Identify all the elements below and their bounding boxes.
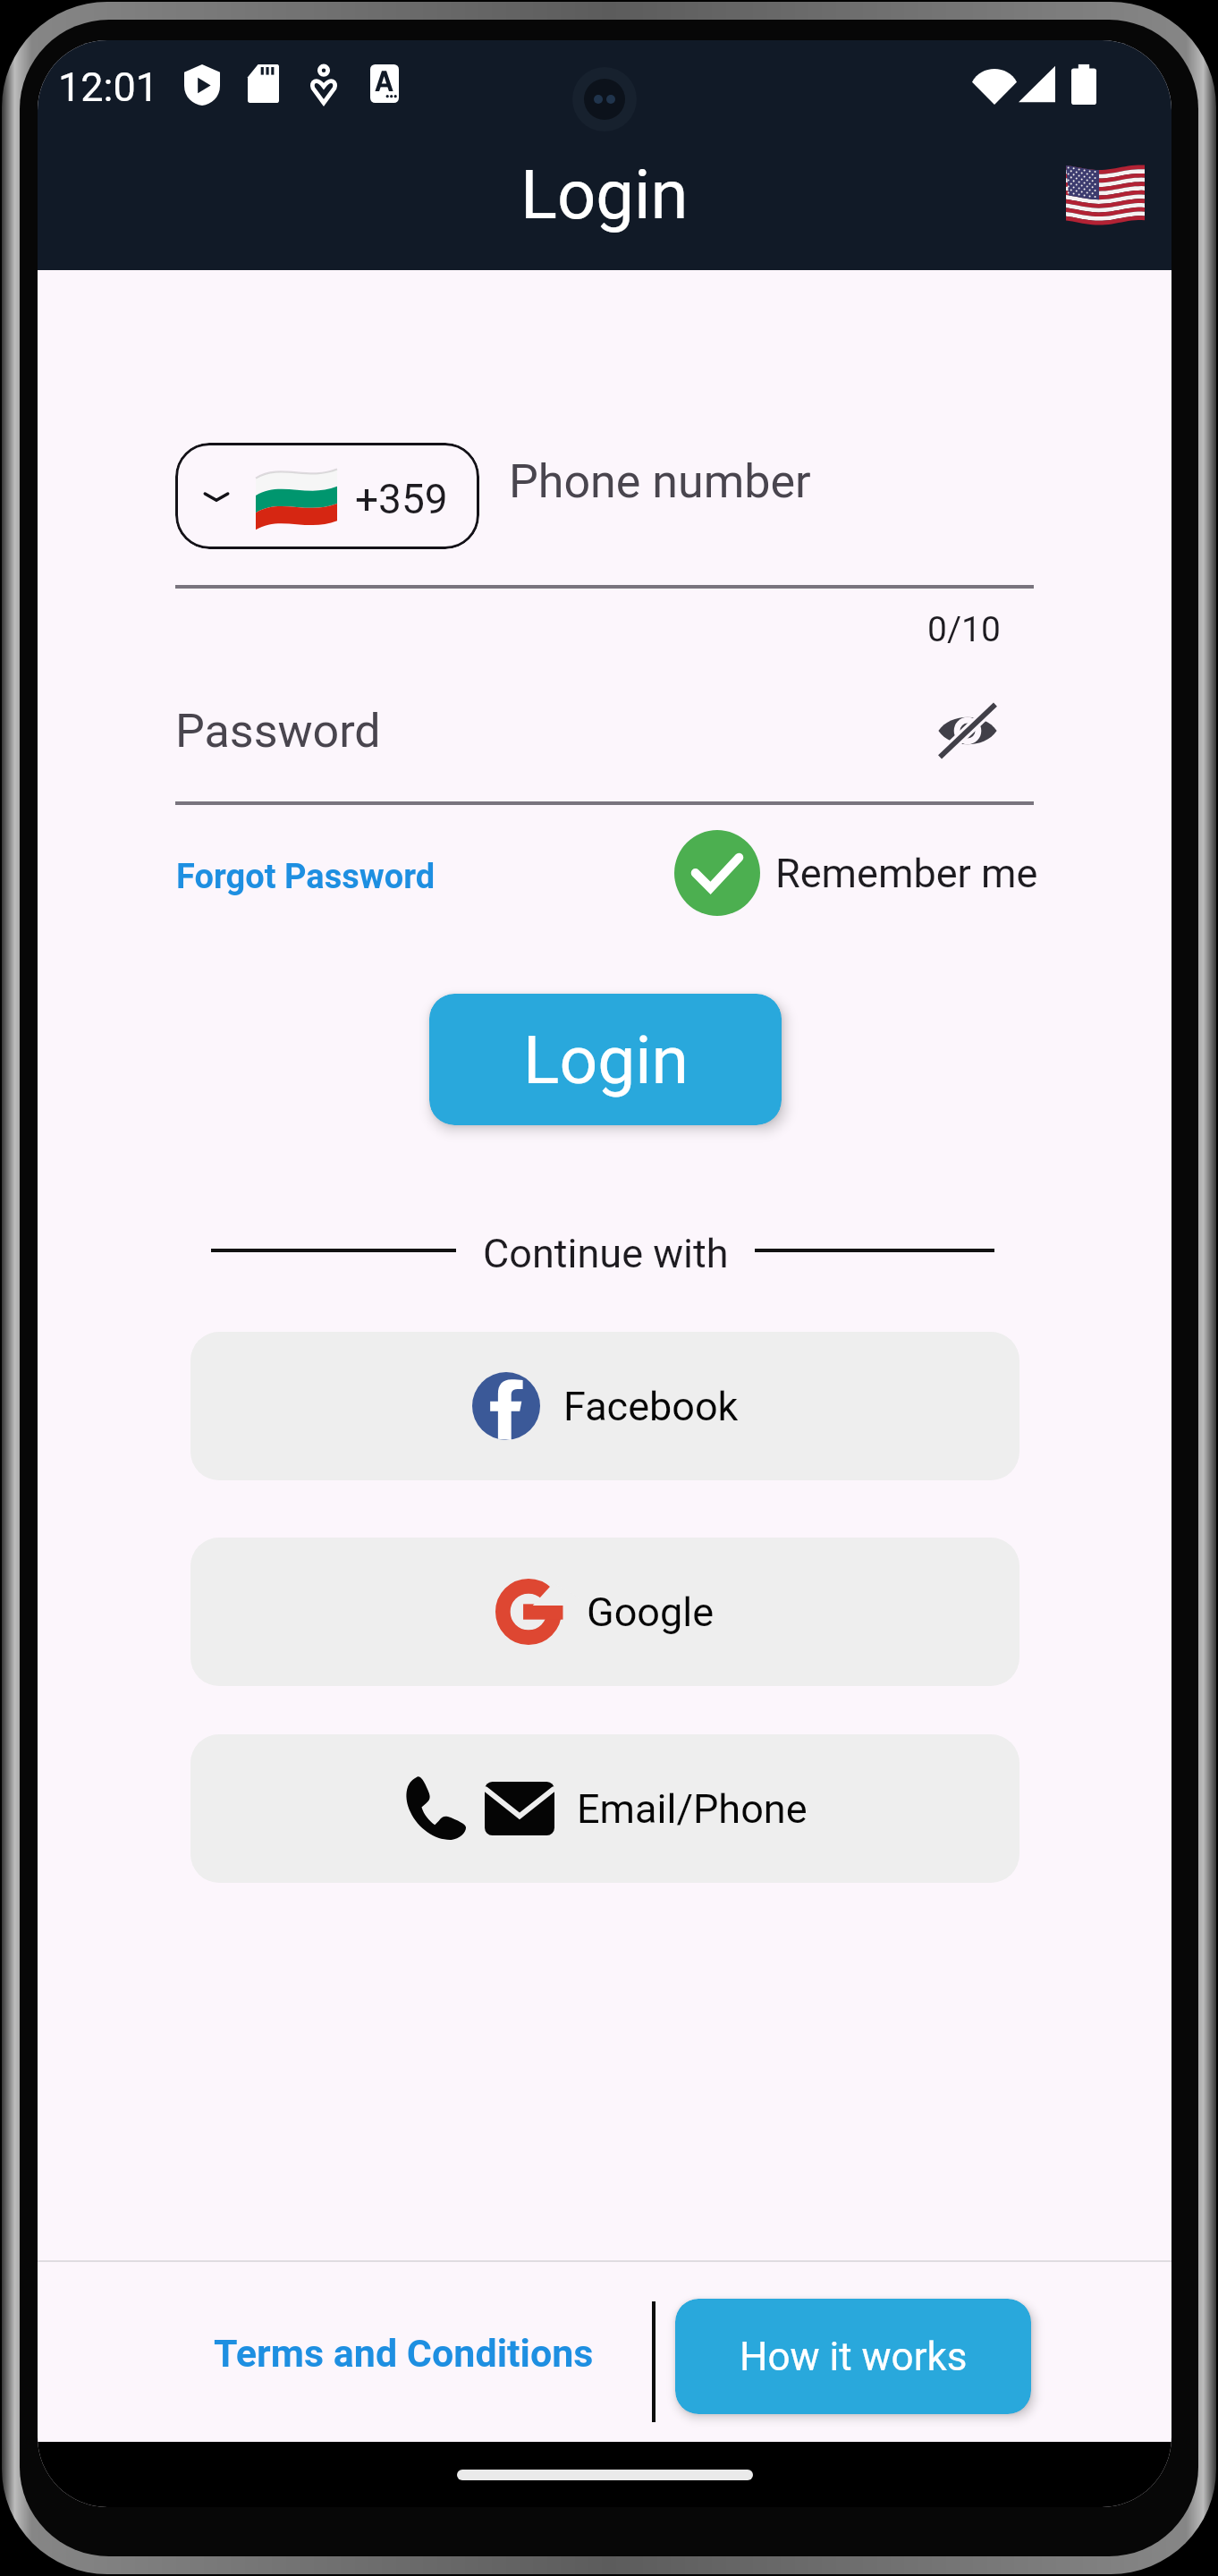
staticText: 0/10 <box>927 609 1001 650</box>
button[interactable]: Remember me <box>674 830 1038 916</box>
staticText: Login <box>523 1021 689 1099</box>
button[interactable]: How it works <box>675 2299 1031 2414</box>
button[interactable]: Google <box>190 1538 1019 1686</box>
button[interactable]: Forgot Password <box>176 857 436 897</box>
staticText: Google <box>587 1589 715 1636</box>
button[interactable]: Email/Phone <box>190 1734 1019 1883</box>
button[interactable]: Show password <box>931 698 1004 764</box>
staticText: 12:01 <box>58 64 159 111</box>
button[interactable]: Change language <box>1053 152 1157 238</box>
staticText: Forgot Password <box>176 857 436 897</box>
staticText: Phone number <box>509 454 811 509</box>
staticText: Login <box>520 155 689 234</box>
staticText: How it works <box>740 2334 968 2380</box>
staticText: Email/Phone <box>577 1785 808 1833</box>
staticText: +359 <box>355 475 448 523</box>
staticText: Password <box>175 704 381 758</box>
staticText: Remember me <box>775 850 1038 897</box>
button[interactable]: Facebook <box>190 1332 1019 1480</box>
button[interactable]: Login <box>429 994 782 1125</box>
button[interactable]: Terms and Conditions <box>214 2331 594 2376</box>
staticText: Terms and Conditions <box>214 2331 594 2376</box>
staticText: Facebook <box>563 1383 739 1430</box>
button[interactable]: +359 <box>175 443 479 549</box>
staticText: Continue with <box>483 1230 729 1277</box>
